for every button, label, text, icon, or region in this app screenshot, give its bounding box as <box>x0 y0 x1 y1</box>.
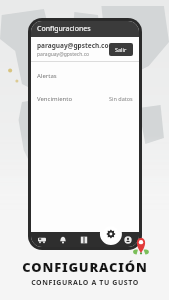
staticText: Sin datos <box>109 95 133 102</box>
button[interactable]: Configuración <box>95 232 117 247</box>
staticText: Salir <box>115 46 127 53</box>
button[interactable]: Reportes <box>73 232 95 247</box>
staticText: paraguay@gpstech.co <box>37 51 90 58</box>
staticText: CONFIGURACIÓN <box>22 258 148 276</box>
button[interactable]: Perfil <box>117 232 139 247</box>
button[interactable]: Configuraciones <box>31 21 139 37</box>
button[interactable]: Alertas <box>31 69 139 82</box>
staticText: paraguay@gpstech.co <box>37 41 109 50</box>
staticText: Configuraciones <box>37 24 91 34</box>
staticText: Alertas <box>37 72 57 80</box>
button[interactable]: Alertas <box>52 232 73 247</box>
button[interactable]: Vehículos <box>31 232 52 247</box>
button[interactable]: Salir <box>109 43 133 56</box>
staticText: CONFIGURALO A TU GUSTO <box>31 278 139 288</box>
staticText: Vencimiento <box>37 95 73 103</box>
button[interactable]: Vencimiento <box>31 92 139 105</box>
